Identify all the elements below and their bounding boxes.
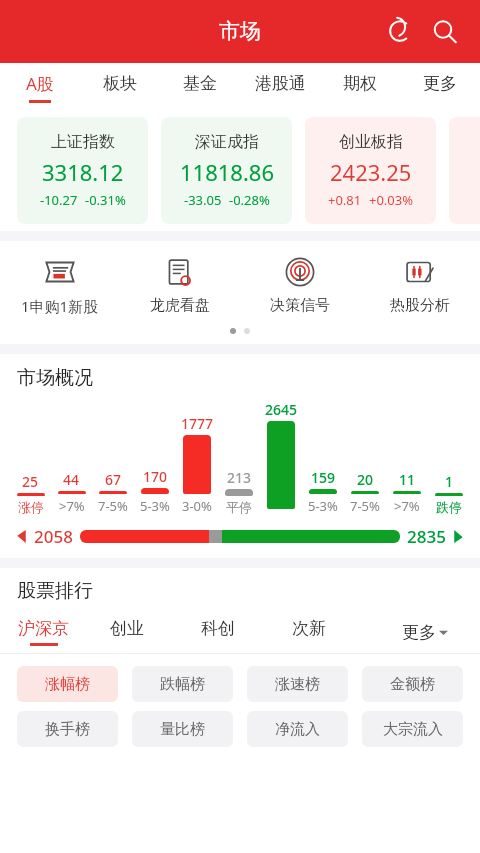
staticText: 创业板指: [339, 132, 403, 152]
button[interactable]: 1申购1新股: [0, 255, 120, 316]
staticText: 1777: [181, 414, 214, 433]
button[interactable]: 创业板指: [305, 117, 436, 224]
button[interactable]: 11: [386, 400, 428, 515]
staticText: 25: [22, 472, 39, 491]
staticText: 次新: [292, 618, 326, 639]
button[interactable]: 44: [51, 400, 92, 515]
staticText: 213: [227, 468, 252, 487]
staticText: 159: [311, 468, 336, 487]
staticText: A股: [26, 72, 54, 95]
button[interactable]: 213: [218, 400, 260, 515]
staticText: 11818.86: [180, 157, 274, 187]
button[interactable]: 龙虎看盘: [120, 255, 240, 315]
staticText: 5-3%: [140, 497, 170, 515]
button[interactable]: 1: [428, 400, 470, 515]
staticText: 热股分析: [390, 296, 450, 315]
button[interactable]: 创业: [106, 611, 197, 653]
staticText: >7%: [394, 497, 420, 515]
staticText: 涨幅榜: [45, 675, 90, 694]
staticText: 创业: [110, 618, 144, 639]
staticText: 跌停: [436, 499, 462, 515]
staticText: 3-0%: [182, 497, 212, 515]
staticText: 更多: [402, 622, 436, 643]
button[interactable]: 159: [302, 400, 344, 515]
staticText: 3318.12: [42, 157, 124, 187]
staticText: -10.27: [40, 191, 78, 209]
button[interactable]: A股: [0, 63, 80, 111]
staticText: +0.81: [328, 191, 362, 209]
staticText: 股票排行: [17, 579, 93, 603]
button[interactable]: 67: [92, 400, 134, 515]
button[interactable]: 决策信号: [240, 255, 360, 315]
staticText: 基金: [183, 73, 217, 94]
button[interactable]: 深证成指: [161, 117, 292, 224]
staticText: 7-5%: [350, 497, 380, 515]
button[interactable]: 2645: [260, 400, 302, 515]
staticText: 涨速榜: [275, 675, 320, 694]
staticText: 科创: [201, 618, 235, 639]
staticText: 2645: [265, 400, 298, 419]
staticText: 净流入: [275, 720, 320, 739]
staticText: 港股通: [255, 73, 306, 94]
button[interactable]: 大宗流入: [362, 711, 463, 747]
button[interactable]: 基金: [160, 63, 240, 111]
staticText: -0.28%: [229, 191, 270, 209]
staticText: 市场: [219, 18, 261, 44]
button[interactable]: 170: [134, 400, 176, 515]
staticText: 7-5%: [98, 497, 128, 515]
button[interactable]: 热股分析: [360, 255, 480, 315]
staticText: 20: [357, 470, 374, 489]
staticText: 44: [63, 470, 80, 489]
staticText: 沪深京: [18, 618, 69, 639]
button[interactable]: 次新: [288, 611, 379, 653]
button[interactable]: 涨速榜: [247, 666, 348, 702]
staticText: -33.05: [184, 191, 222, 209]
staticText: 板块: [103, 73, 137, 94]
staticText: 上证指数: [51, 132, 115, 152]
button[interactable]: 板块: [80, 63, 160, 111]
button[interactable]: 净流入: [247, 711, 348, 747]
button[interactable]: 港股通: [240, 63, 320, 111]
staticText: >7%: [59, 497, 85, 515]
staticText: 跌幅榜: [160, 675, 205, 694]
staticText: 2835: [407, 525, 446, 548]
staticText: 大宗流入: [383, 720, 443, 739]
button[interactable]: Night mode: [378, 9, 422, 53]
button[interactable]: 科创: [197, 611, 288, 653]
button[interactable]: 更多: [400, 63, 480, 111]
staticText: 1: [445, 472, 454, 491]
staticText: 170: [143, 467, 168, 486]
button[interactable]: 期权: [320, 63, 400, 111]
button[interactable]: 跌幅榜: [132, 666, 233, 702]
staticText: 期权: [343, 73, 377, 94]
staticText: 2423.25: [330, 157, 412, 187]
button[interactable]: 金额榜: [362, 666, 463, 702]
button[interactable]: 涨幅榜: [17, 666, 118, 702]
staticText: 市场概况: [17, 366, 93, 390]
staticText: 2058: [34, 525, 73, 548]
button[interactable]: 换手榜: [17, 711, 118, 747]
button[interactable]: 20: [344, 400, 386, 515]
staticText: +0.03%: [369, 191, 414, 209]
staticText: 量比榜: [160, 720, 205, 739]
staticText: 换手榜: [45, 720, 90, 739]
staticText: 67: [105, 470, 122, 489]
staticText: -0.31%: [85, 191, 126, 209]
staticText: 深证成指: [195, 132, 259, 152]
staticText: 龙虎看盘: [150, 296, 210, 315]
staticText: 11: [399, 470, 416, 489]
staticText: 平停: [226, 499, 252, 515]
button[interactable]: 1777: [176, 400, 218, 515]
button[interactable]: 更多: [379, 611, 470, 653]
button[interactable]: Search: [422, 9, 466, 53]
staticText: 1申购1新股: [21, 296, 99, 316]
staticText: 5-3%: [308, 497, 338, 515]
staticText: 更多: [423, 73, 457, 94]
button[interactable]: 上证指数: [17, 117, 148, 224]
button[interactable]: 量比榜: [132, 711, 233, 747]
button[interactable]: 25: [10, 400, 51, 515]
staticText: 金额榜: [390, 675, 435, 694]
button[interactable]: 沪深京: [14, 611, 106, 653]
